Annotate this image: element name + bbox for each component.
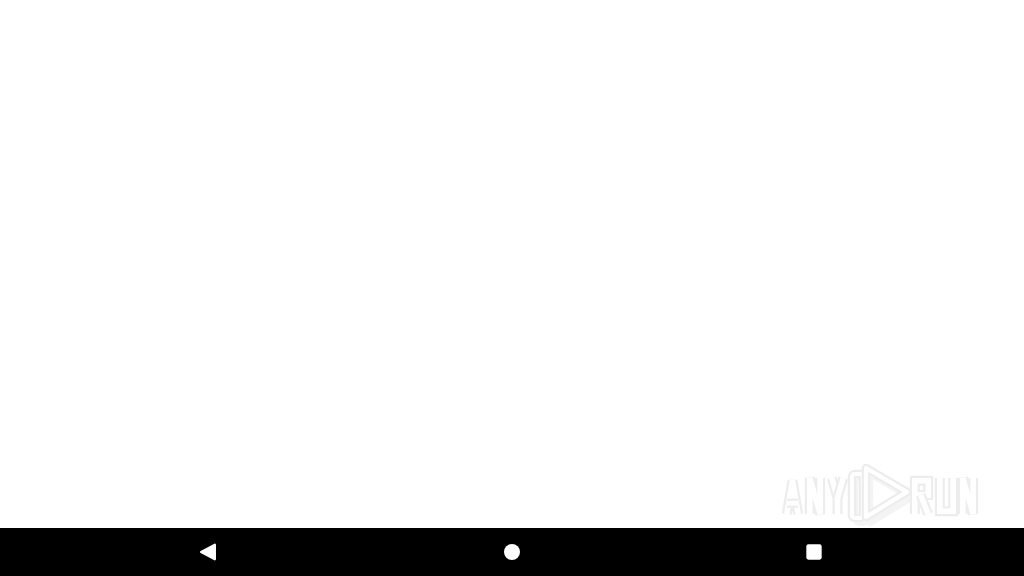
button[interactable]: Recent apps [790, 528, 838, 576]
button[interactable]: Home [488, 528, 536, 576]
button[interactable]: Back [184, 528, 232, 576]
